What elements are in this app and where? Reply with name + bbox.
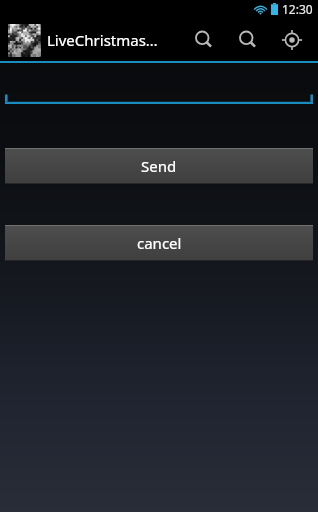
- button[interactable]: Send: [5, 148, 313, 184]
- staticText: 12:30: [282, 1, 313, 17]
- staticText: LiveChristmas…: [47, 30, 158, 50]
- button[interactable]: Search: [182, 18, 226, 61]
- button[interactable]: My location: [270, 18, 314, 61]
- button[interactable]: Search nearby: [226, 18, 270, 61]
- staticText: Send: [141, 156, 177, 176]
- button[interactable]: [5, 76, 313, 104]
- staticText: cancel: [137, 233, 182, 253]
- button[interactable]: cancel: [5, 225, 313, 261]
